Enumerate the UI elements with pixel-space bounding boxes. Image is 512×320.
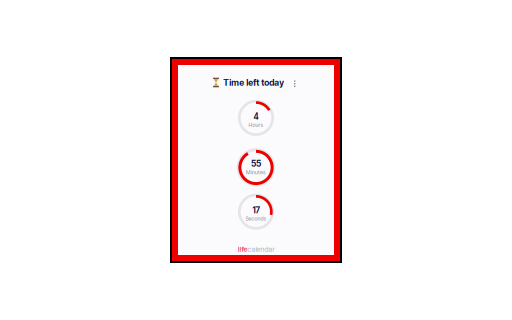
button[interactable]: 4 xyxy=(239,101,273,135)
button[interactable]: More options xyxy=(290,76,299,89)
button[interactable]: life xyxy=(237,245,274,253)
staticText: Hours xyxy=(248,122,263,128)
staticText: 17 xyxy=(252,205,259,215)
staticText: 4 xyxy=(253,112,258,121)
button[interactable]: Time left today widget xyxy=(170,57,342,263)
staticText: Time left today xyxy=(223,77,284,88)
staticText: calendar xyxy=(247,245,274,253)
button[interactable]: 55 xyxy=(238,150,274,185)
staticText: life xyxy=(237,245,247,253)
staticText: 55 xyxy=(251,158,261,169)
staticText: Minutes xyxy=(246,169,266,176)
button[interactable]: 17 xyxy=(239,195,273,228)
staticText: Seconds xyxy=(245,215,266,222)
